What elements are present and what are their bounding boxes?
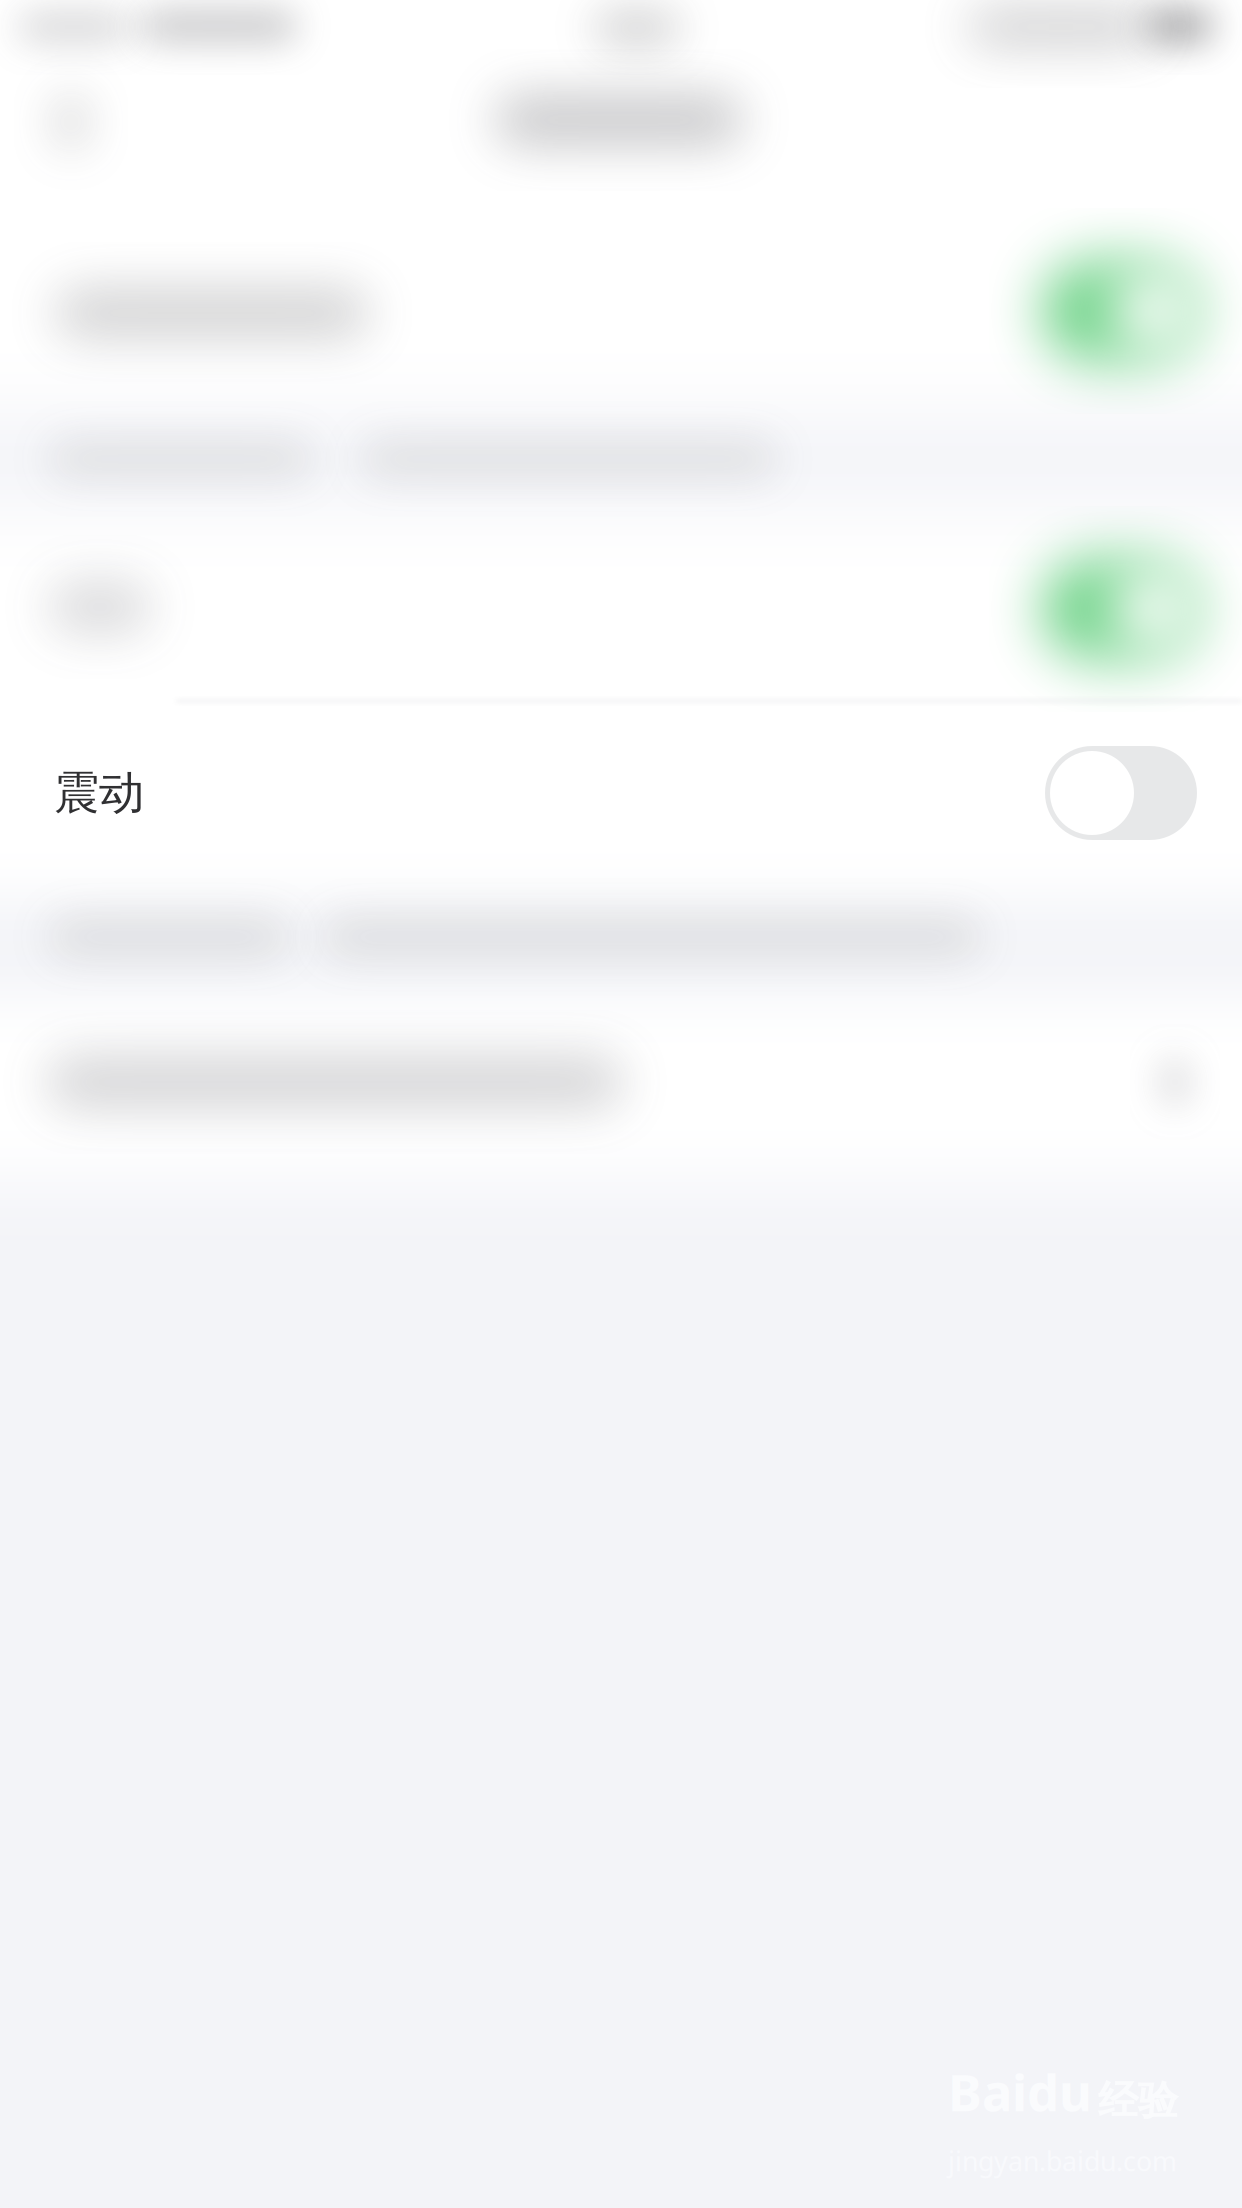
- staticText: 经验: [1098, 2076, 1178, 2125]
- button[interactable]: 震动: [0, 705, 1242, 881]
- staticText: 震动: [54, 765, 144, 821]
